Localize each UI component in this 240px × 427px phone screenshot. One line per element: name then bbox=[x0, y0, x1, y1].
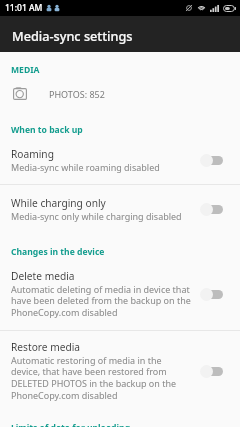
button[interactable]: Photos bbox=[0, 76, 240, 104]
staticText: Limits of data for uploading bbox=[11, 422, 131, 427]
staticText: Media-sync settings bbox=[12, 27, 133, 44]
staticText: Automatic restoring of media in the devi… bbox=[11, 354, 192, 402]
button[interactable]: Delete media bbox=[0, 258, 240, 330]
staticText: Media-sync while roaming disabled bbox=[11, 161, 160, 173]
staticText: When to back up bbox=[11, 124, 83, 136]
other: Photos bbox=[13, 87, 27, 100]
other: Silent mode bbox=[185, 4, 193, 12]
staticText: Roaming bbox=[11, 147, 54, 161]
button[interactable]: Toggle setting bbox=[200, 202, 223, 216]
staticText: PHOTOS: 852 bbox=[49, 88, 105, 100]
staticText: Changes in the device bbox=[11, 246, 105, 258]
staticText: Restore media bbox=[11, 340, 81, 354]
button[interactable]: Toggle setting bbox=[200, 153, 223, 167]
button[interactable]: Toggle setting bbox=[200, 364, 223, 378]
button[interactable]: Restore media bbox=[0, 331, 240, 410]
button[interactable]: Toggle setting bbox=[200, 287, 223, 301]
staticText: MEDIA bbox=[11, 64, 40, 76]
button[interactable]: Roaming bbox=[0, 136, 240, 184]
staticText: Delete media bbox=[11, 269, 75, 283]
staticText: 11:01 AM bbox=[5, 2, 43, 14]
button[interactable]: While charging only bbox=[0, 185, 240, 233]
staticText: Media-sync only while charging disabled bbox=[11, 210, 182, 222]
staticText: Automatic deleting of media in device th… bbox=[11, 283, 192, 319]
staticText: While charging only bbox=[11, 196, 106, 210]
